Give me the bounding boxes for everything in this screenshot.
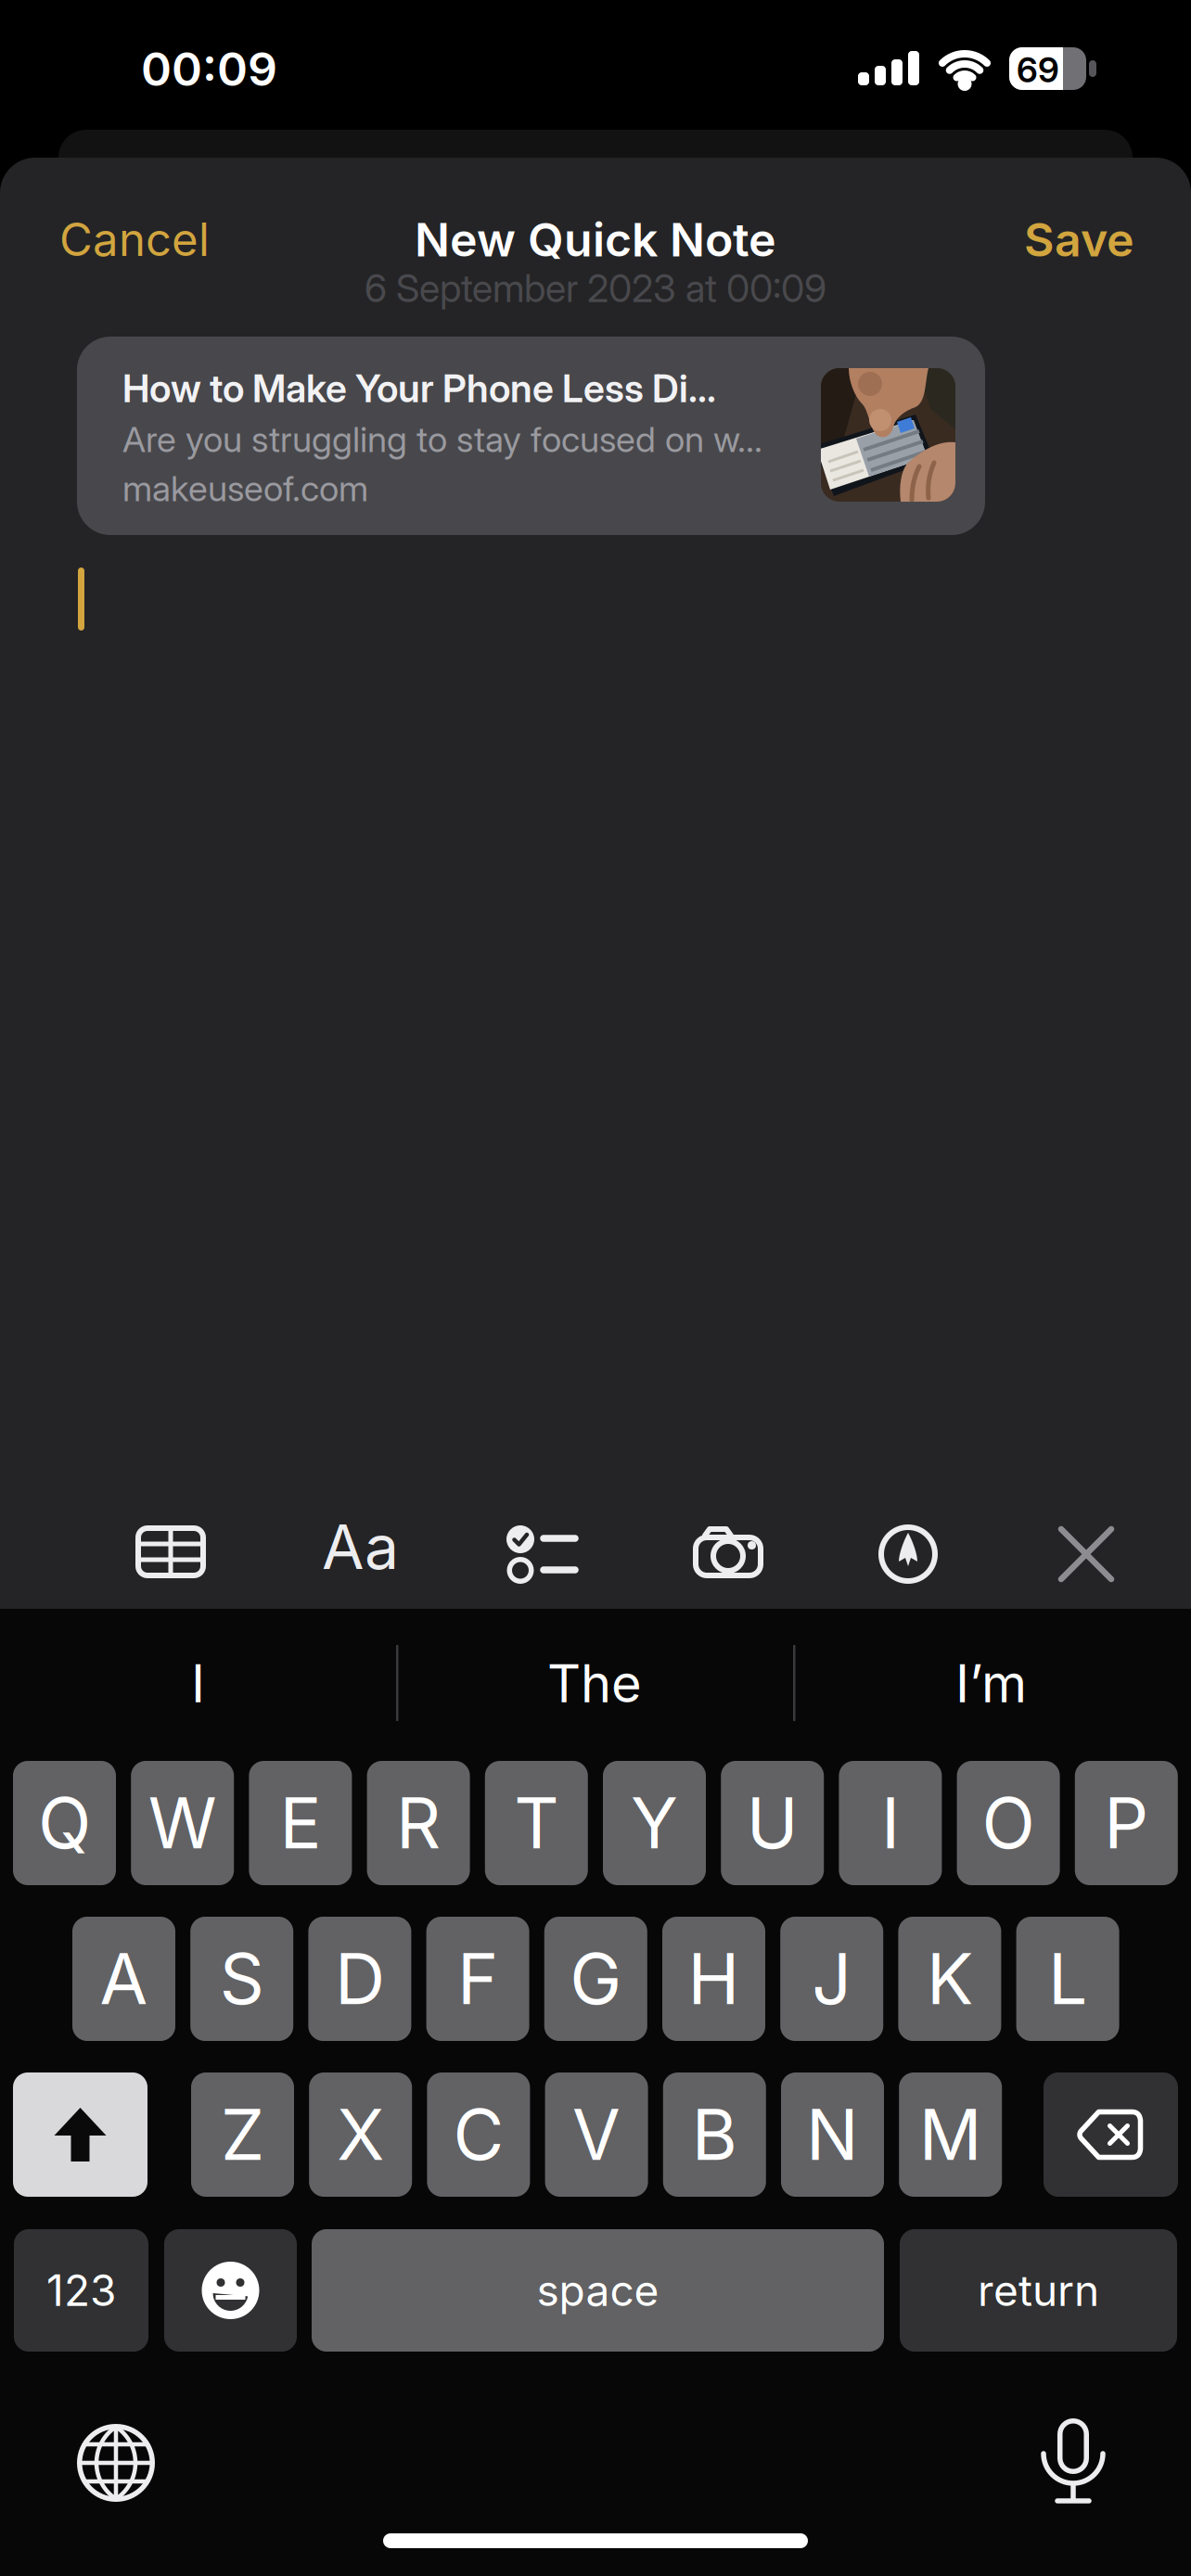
staticText: Are you struggling to stay focused on w.… xyxy=(122,418,762,460)
button[interactable]: J xyxy=(780,1917,883,2041)
staticText: return xyxy=(978,2265,1099,2316)
button[interactable]: Emoji xyxy=(164,2229,297,2352)
staticText: B xyxy=(692,2093,737,2177)
staticText: F xyxy=(457,1937,498,2021)
staticText: J xyxy=(812,1937,852,2021)
button[interactable]: M xyxy=(899,2072,1002,2197)
staticText: Save xyxy=(1024,211,1134,268)
staticText: I xyxy=(881,1781,900,1865)
staticText: C xyxy=(453,2093,504,2177)
staticText: E xyxy=(280,1781,321,1865)
staticText: H xyxy=(688,1937,740,2021)
staticText: R xyxy=(396,1781,441,1865)
staticText: A xyxy=(100,1937,148,2021)
button[interactable]: Q xyxy=(13,1761,116,1885)
button[interactable]: Z xyxy=(191,2072,294,2197)
staticText: Aa xyxy=(322,1510,399,1584)
button[interactable]: Shift xyxy=(13,2072,147,2197)
staticText: space xyxy=(537,2265,659,2316)
staticText: I’m xyxy=(955,1652,1027,1715)
button[interactable]: Dictate xyxy=(1041,2418,1106,2504)
button[interactable]: R xyxy=(367,1761,470,1885)
button[interactable]: How to Make Your Phone Less Di... xyxy=(77,337,985,535)
staticText: T xyxy=(514,1781,559,1865)
staticText: makeuseof.com xyxy=(122,467,368,510)
button[interactable]: P xyxy=(1075,1761,1178,1885)
button[interactable]: I xyxy=(0,1616,396,1751)
button[interactable]: A xyxy=(72,1917,175,2041)
button[interactable]: 123 xyxy=(14,2229,148,2352)
button[interactable]: W xyxy=(131,1761,234,1885)
staticText: Q xyxy=(38,1781,91,1865)
button[interactable]: E xyxy=(249,1761,352,1885)
button[interactable]: D xyxy=(308,1917,411,2041)
button[interactable]: X xyxy=(309,2072,412,2197)
staticText: How to Make Your Phone Less Di... xyxy=(122,365,716,411)
staticText: 6 September 2023 at 00:09 xyxy=(365,265,826,311)
staticText: L xyxy=(1048,1937,1087,2021)
button[interactable]: Next keyboard xyxy=(77,2424,155,2502)
button[interactable]: Insert photo xyxy=(693,1525,763,1578)
button[interactable]: I’m xyxy=(793,1616,1189,1751)
staticText: I xyxy=(191,1652,205,1715)
button[interactable]: C xyxy=(427,2072,530,2197)
staticText: O xyxy=(982,1781,1035,1865)
button[interactable]: Dismiss toolbar xyxy=(1061,1529,1111,1579)
button[interactable]: S xyxy=(190,1917,293,2041)
staticText: 123 xyxy=(46,2265,116,2316)
staticText: The xyxy=(547,1652,642,1715)
staticText: S xyxy=(220,1937,264,2021)
button[interactable]: G xyxy=(544,1917,647,2041)
button[interactable]: Markup xyxy=(878,1524,938,1584)
button[interactable]: Checklist xyxy=(506,1525,577,1585)
button[interactable]: V xyxy=(545,2072,648,2197)
button[interactable]: Save xyxy=(1024,211,1134,268)
button[interactable]: space xyxy=(312,2229,884,2352)
staticText: P xyxy=(1104,1781,1149,1865)
staticText: G xyxy=(570,1937,622,2021)
button[interactable]: The xyxy=(396,1616,793,1751)
button[interactable]: O xyxy=(957,1761,1060,1885)
button[interactable]: Insert table xyxy=(135,1525,206,1578)
staticText: V xyxy=(572,2093,621,2177)
button[interactable]: U xyxy=(721,1761,824,1885)
staticText: M xyxy=(919,2093,982,2177)
staticText: 00:09 xyxy=(141,41,277,97)
staticText: W xyxy=(148,1781,217,1865)
staticText: N xyxy=(806,2093,859,2177)
staticText: Y xyxy=(631,1781,678,1865)
staticText: 69 xyxy=(1017,49,1059,91)
staticText: X xyxy=(337,2093,384,2177)
button[interactable]: N xyxy=(781,2072,884,2197)
button[interactable]: H xyxy=(662,1917,765,2041)
button[interactable]: K xyxy=(898,1917,1001,2041)
button[interactable]: L xyxy=(1016,1917,1119,2041)
button[interactable]: Format text xyxy=(322,1510,399,1584)
button[interactable]: Delete xyxy=(1044,2072,1178,2197)
button[interactable]: B xyxy=(663,2072,766,2197)
button[interactable]: F xyxy=(426,1917,529,2041)
staticText: U xyxy=(746,1781,798,1865)
button[interactable]: Y xyxy=(603,1761,706,1885)
button[interactable]: return xyxy=(900,2229,1177,2352)
staticText: New Quick Note xyxy=(415,211,776,268)
button[interactable]: T xyxy=(485,1761,588,1885)
button[interactable]: Cancel xyxy=(59,212,210,267)
staticText: Z xyxy=(221,2093,264,2177)
button[interactable]: I xyxy=(839,1761,942,1885)
staticText: Cancel xyxy=(59,212,210,267)
staticText: K xyxy=(927,1937,973,2021)
staticText: D xyxy=(335,1937,385,2021)
